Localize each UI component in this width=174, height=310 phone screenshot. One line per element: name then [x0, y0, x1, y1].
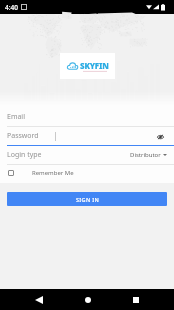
button[interactable]: Remember Me: [8, 165, 167, 181]
staticText: SIGN IN: [76, 196, 99, 203]
button[interactable]: Email: [0, 108, 174, 127]
button[interactable]: Home: [77, 289, 98, 310]
staticText: Remember Me: [32, 169, 74, 177]
button[interactable]: Login type: [0, 146, 174, 165]
button[interactable]: Password: [0, 127, 174, 146]
staticText: Password: [7, 131, 39, 141]
staticText: Distributor: [130, 151, 161, 159]
staticText: 4:40: [5, 3, 18, 12]
staticText: SKYFIN: [80, 60, 109, 71]
staticText: Email: [7, 112, 25, 122]
staticText: Login type: [7, 150, 42, 160]
button[interactable]: Recents: [125, 289, 146, 310]
button[interactable]: Toggle password visibility: [157, 133, 164, 140]
button[interactable]: Back: [28, 289, 49, 310]
button[interactable]: SIGN IN: [7, 192, 167, 206]
